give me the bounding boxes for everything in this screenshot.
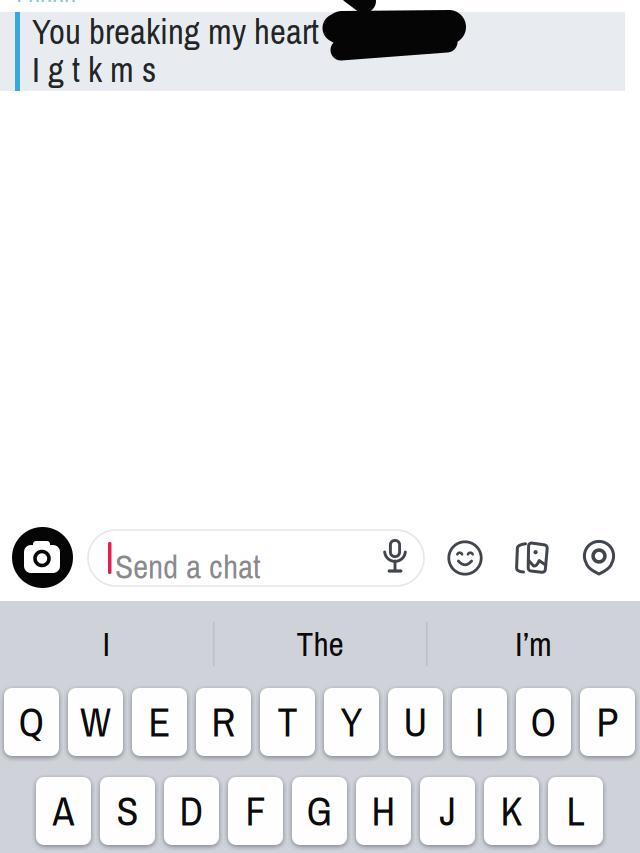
button[interactable]: G xyxy=(292,776,347,846)
button[interactable]: I xyxy=(0,601,213,687)
button[interactable]: U xyxy=(388,687,443,757)
button[interactable]: Q xyxy=(4,687,59,757)
button[interactable]: E xyxy=(132,687,187,757)
button[interactable]: W xyxy=(68,687,123,757)
staticText: I’m xyxy=(515,622,552,666)
staticText: W xyxy=(80,695,111,749)
staticText: chuuu xyxy=(17,0,76,16)
button[interactable]: Y xyxy=(324,687,379,757)
button[interactable]: P xyxy=(580,687,635,757)
staticText: K xyxy=(500,784,522,838)
staticText: O xyxy=(530,695,556,749)
staticText: You breaking my heart xyxy=(32,8,319,55)
staticText: S xyxy=(116,784,138,838)
staticText: Q xyxy=(18,695,44,749)
staticText: U xyxy=(403,695,427,749)
button[interactable]: A xyxy=(36,776,91,846)
staticText: P xyxy=(596,695,618,749)
staticText: G xyxy=(306,784,332,838)
button[interactable]: Location xyxy=(583,540,615,577)
button[interactable]: I’m xyxy=(427,601,640,687)
button[interactable]: I xyxy=(452,687,507,757)
button[interactable]: D xyxy=(164,776,219,846)
button[interactable]: L xyxy=(548,776,603,846)
button[interactable]: R xyxy=(196,687,251,757)
staticText: I xyxy=(102,622,110,666)
button[interactable]: Open camera xyxy=(12,527,73,588)
staticText: The xyxy=(296,622,343,666)
button[interactable]: T xyxy=(260,687,315,757)
button[interactable]: Stickers xyxy=(514,541,550,575)
staticText: E xyxy=(148,695,170,749)
staticText: R xyxy=(211,695,235,749)
button[interactable]: The xyxy=(214,601,426,687)
staticText: D xyxy=(179,784,203,838)
button[interactable]: Send a chat xyxy=(88,530,424,586)
button[interactable]: O xyxy=(516,687,571,757)
staticText: L xyxy=(566,784,584,838)
staticText: F xyxy=(245,784,265,838)
staticText: H xyxy=(371,784,395,838)
staticText: T xyxy=(277,695,297,749)
button[interactable]: S xyxy=(100,776,155,846)
staticText: Y xyxy=(340,695,362,749)
button[interactable]: J xyxy=(420,776,475,846)
staticText: A xyxy=(52,784,74,838)
button[interactable]: K xyxy=(484,776,539,846)
staticText: Send a chat xyxy=(115,544,261,589)
button[interactable]: H xyxy=(356,776,411,846)
button[interactable]: Emoji xyxy=(447,540,483,576)
staticText: I xyxy=(475,695,484,749)
staticText: I g t k m s xyxy=(32,46,156,93)
staticText: J xyxy=(439,784,455,838)
button[interactable]: F xyxy=(228,776,283,846)
